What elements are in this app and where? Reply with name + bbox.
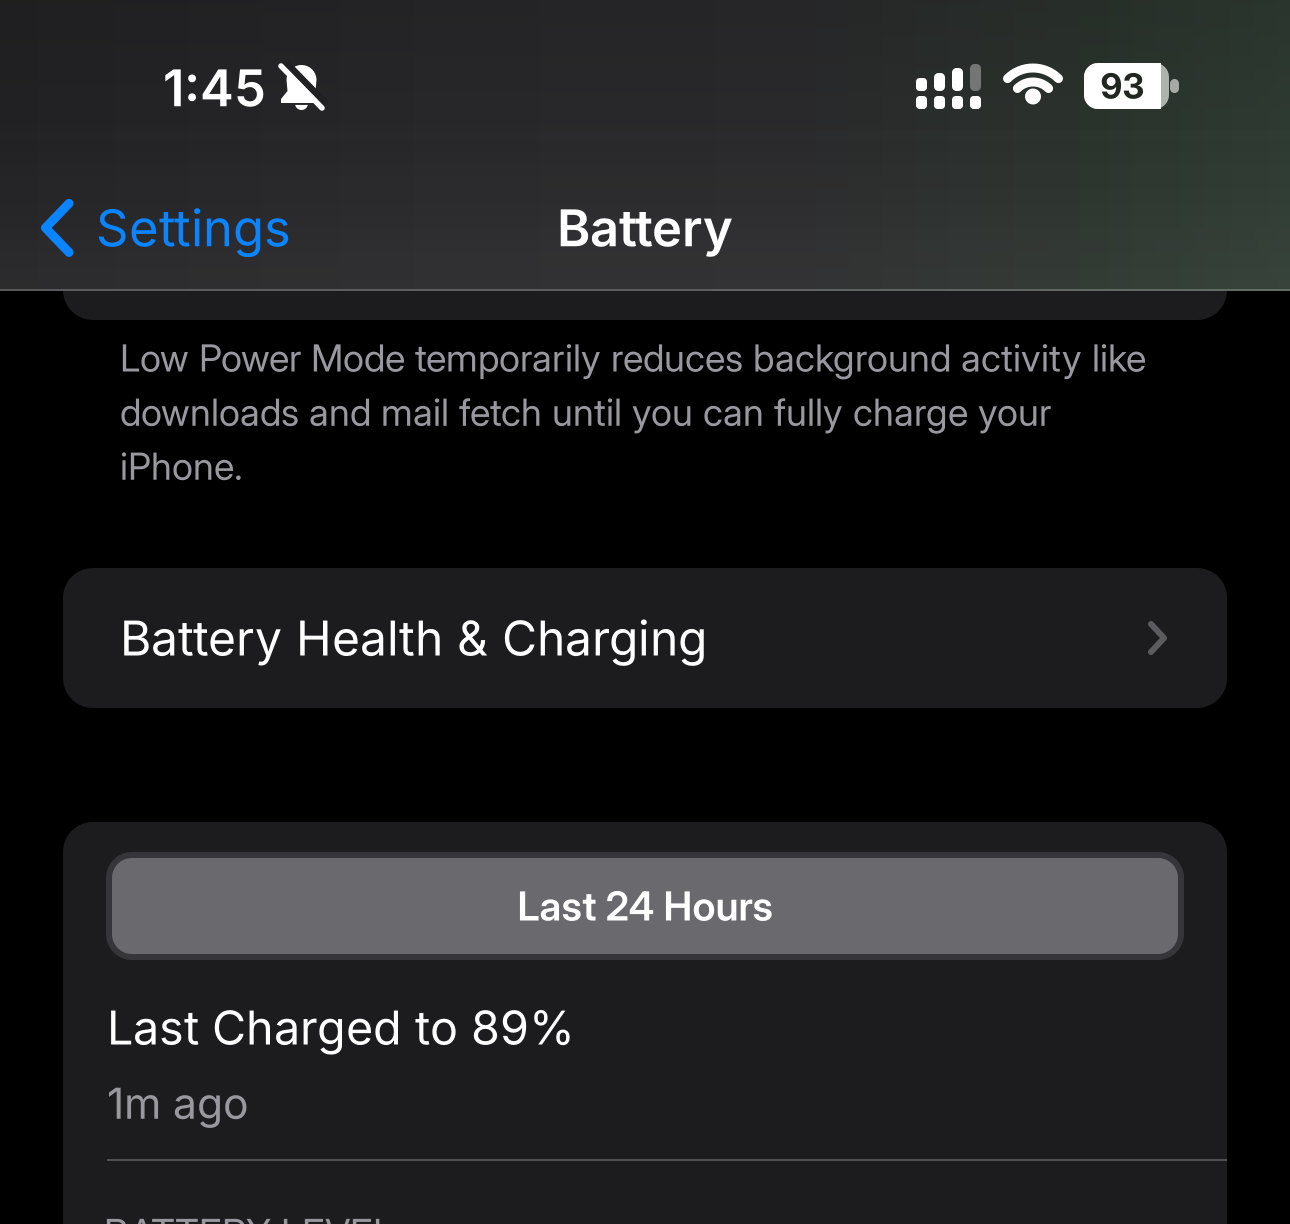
staticText: 1:45 <box>163 58 266 118</box>
staticText: Last Charged to 89% <box>107 1000 575 1055</box>
staticText: Settings <box>96 198 291 258</box>
staticText: Battery Health & Charging <box>120 610 707 666</box>
button[interactable]: Battery Health & Charging <box>63 568 1227 708</box>
button[interactable]: Settings <box>41 198 291 258</box>
staticText: downloads and mail fetch until you can f… <box>120 390 1051 434</box>
staticText: BATTERY LEVEL <box>104 1210 394 1224</box>
staticText: 93 <box>1100 66 1144 106</box>
staticText: iPhone. <box>120 444 243 488</box>
staticText: Low Power Mode temporarily reduces backg… <box>120 336 1146 380</box>
staticText: 1m ago <box>107 1078 249 1128</box>
staticText: Last 24 Hours <box>517 882 772 930</box>
staticText: Battery <box>557 198 733 258</box>
button[interactable]: Last 24 Hours <box>106 852 1184 960</box>
